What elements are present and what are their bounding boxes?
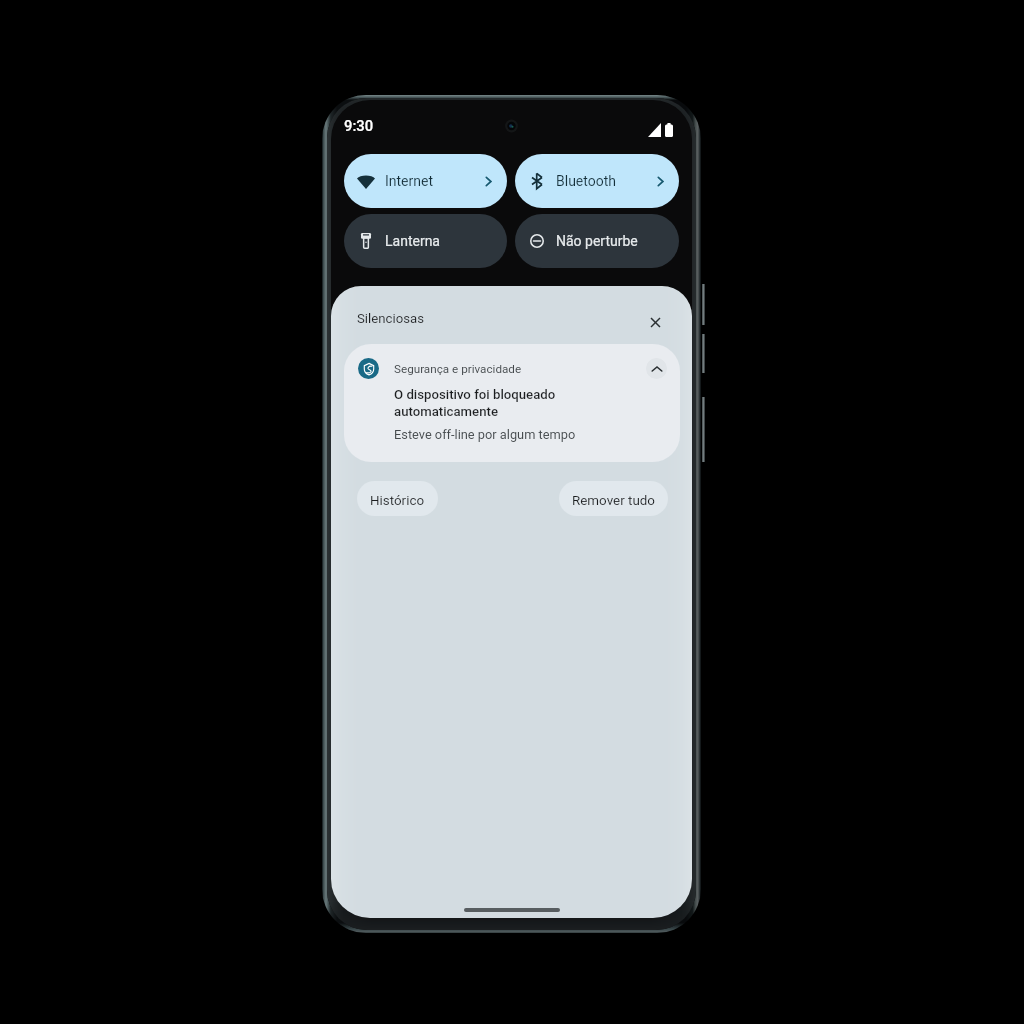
staticText: Bluetooth	[556, 173, 616, 189]
staticText: Segurança e privacidade	[394, 362, 522, 376]
staticText: Remover tudo	[572, 493, 655, 509]
button[interactable]: Remover tudo	[559, 481, 668, 516]
staticText: Lanterna	[385, 233, 440, 249]
button[interactable]: Histórico	[357, 481, 438, 516]
staticText: O dispositivo foi bloqueado automaticame…	[394, 387, 556, 419]
button[interactable]: Lanterna	[344, 214, 507, 268]
button[interactable]: Recolher	[646, 358, 667, 379]
staticText: Esteve off-line por algum tempo	[394, 427, 576, 442]
staticText: Histórico	[370, 493, 425, 509]
button[interactable]: Silenciosas	[349, 301, 432, 335]
staticText: 9:30	[344, 117, 374, 134]
button[interactable]: Bluetooth	[515, 154, 679, 208]
button[interactable]: Segurança e privacidade	[344, 344, 680, 462]
button[interactable]: Fechar	[642, 309, 668, 335]
staticText: Silenciosas	[357, 311, 424, 326]
button[interactable]: Não perturbe	[515, 214, 679, 268]
button[interactable]: Internet	[344, 154, 507, 208]
staticText: Não perturbe	[556, 233, 638, 249]
staticText: Internet	[385, 173, 434, 189]
